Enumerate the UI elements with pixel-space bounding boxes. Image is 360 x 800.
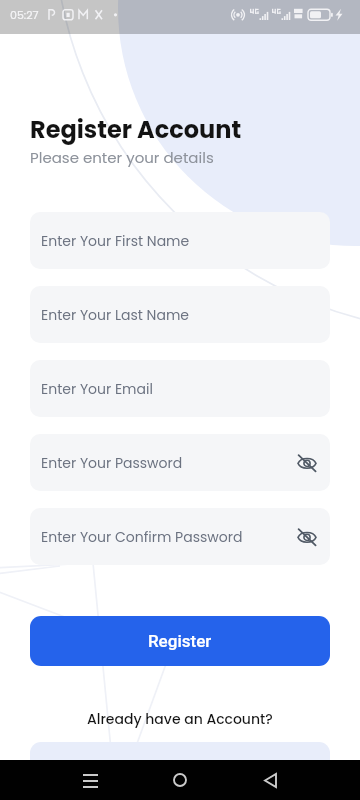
staticText: Register Account bbox=[30, 113, 242, 147]
staticText: 05:27 bbox=[10, 7, 39, 22]
button[interactable]: Already have an Account? bbox=[87, 709, 273, 729]
button[interactable]: Enter Your Last Name bbox=[30, 286, 330, 343]
button[interactable]: Show password bbox=[294, 450, 320, 476]
button[interactable]: Enter Your Confirm Password bbox=[30, 508, 330, 565]
button[interactable]: Back bbox=[246, 760, 294, 800]
staticText: Enter Your Email bbox=[41, 379, 153, 399]
button[interactable]: Show password bbox=[294, 524, 320, 550]
staticText: Enter Your Confirm Password bbox=[41, 527, 243, 547]
button[interactable]: Register bbox=[30, 616, 330, 666]
button[interactable] bbox=[30, 742, 330, 792]
staticText: Enter Your Password bbox=[41, 453, 183, 473]
button[interactable]: Enter Your Password bbox=[30, 434, 330, 491]
staticText: Enter Your First Name bbox=[41, 231, 190, 251]
button[interactable]: Home bbox=[156, 760, 204, 800]
staticText: Register bbox=[148, 631, 212, 651]
button[interactable]: Enter Your Email bbox=[30, 360, 330, 417]
button[interactable]: Recent apps bbox=[66, 760, 114, 800]
staticText: Please enter your details bbox=[30, 147, 214, 168]
button[interactable]: Enter Your First Name bbox=[30, 212, 330, 269]
staticText: Enter Your Last Name bbox=[41, 305, 189, 325]
